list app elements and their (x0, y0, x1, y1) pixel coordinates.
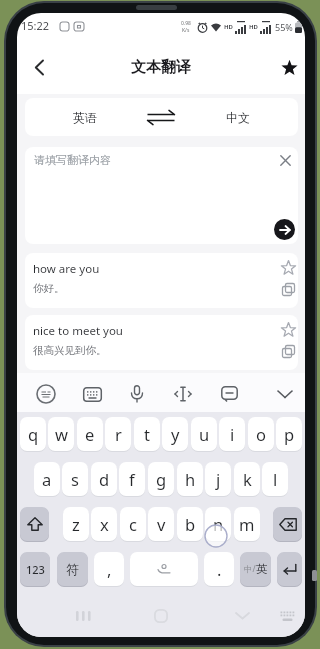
button[interactable]: q (20, 417, 46, 451)
button[interactable]: f (119, 462, 145, 496)
staticText: y (171, 423, 180, 445)
button[interactable]: k (234, 462, 260, 496)
staticText: , (107, 558, 112, 580)
staticText: d (99, 468, 110, 490)
staticText: 123 (26, 562, 45, 577)
button[interactable] (144, 98, 178, 136)
button[interactable]: v (148, 507, 174, 541)
button[interactable] (216, 381, 242, 407)
staticText: 请填写翻译内容 (34, 153, 111, 167)
staticText: HD (249, 23, 258, 31)
staticText: m (239, 513, 255, 535)
staticText: i (230, 423, 235, 445)
button[interactable]: p (276, 417, 302, 451)
button[interactable] (273, 148, 297, 172)
staticText: K/s (182, 27, 190, 34)
staticText: w (55, 423, 68, 445)
button[interactable]: l (262, 462, 288, 496)
staticText: 文本翻译 (131, 58, 191, 77)
button[interactable] (277, 256, 298, 278)
button[interactable]: s (62, 462, 88, 496)
staticText: . (217, 558, 222, 580)
button[interactable]: 符 (57, 552, 88, 586)
button[interactable]: , (94, 552, 124, 586)
button[interactable] (273, 507, 302, 541)
staticText: e (85, 423, 95, 445)
staticText: 0.98 (181, 20, 191, 27)
staticText: 55% (275, 21, 293, 33)
button[interactable] (276, 54, 302, 80)
staticText: nice to meet you (33, 323, 123, 339)
button[interactable]: u (191, 417, 217, 451)
staticText: 15:22 (21, 18, 50, 33)
button[interactable] (278, 341, 298, 361)
button[interactable]: 英语 (25, 98, 144, 136)
staticText: c (129, 513, 137, 535)
staticText: 很高兴见到你。 (33, 344, 107, 357)
button[interactable]: o (248, 417, 274, 451)
button[interactable] (277, 552, 302, 586)
staticText: 英语 (73, 110, 97, 125)
staticText: u (199, 423, 210, 445)
button[interactable]: x (91, 507, 117, 541)
button[interactable]: j (205, 462, 231, 496)
button[interactable] (124, 381, 150, 407)
button[interactable]: y (162, 417, 188, 451)
staticText: 你好。 (33, 282, 65, 295)
staticText: h (185, 468, 196, 490)
button[interactable] (147, 603, 175, 629)
button[interactable] (25, 53, 53, 81)
staticText: j (216, 468, 221, 490)
button[interactable]: i (219, 417, 245, 451)
staticText: f (129, 468, 135, 490)
button[interactable]: a (34, 462, 60, 496)
button[interactable]: d (91, 462, 117, 496)
staticText: q (28, 423, 39, 445)
button[interactable] (274, 219, 295, 240)
button[interactable]: b (177, 507, 203, 541)
button[interactable]: 123 (20, 552, 50, 586)
staticText: o (256, 423, 266, 445)
staticText: a (42, 468, 52, 490)
staticText: HD (224, 23, 233, 31)
button[interactable] (79, 381, 105, 407)
button[interactable]: w (48, 417, 74, 451)
button[interactable] (275, 605, 299, 627)
button[interactable] (278, 279, 298, 299)
button[interactable]: m (234, 507, 260, 541)
button[interactable]: g (148, 462, 174, 496)
button[interactable]: n (205, 507, 231, 541)
button[interactable]: 中文 (178, 98, 298, 136)
button[interactable] (20, 507, 49, 541)
button[interactable]: h (177, 462, 203, 496)
staticText: t (144, 423, 150, 445)
staticText: k (243, 468, 252, 490)
staticText: how are you (33, 261, 100, 277)
button[interactable]: z (63, 507, 89, 541)
button[interactable] (272, 381, 298, 407)
button[interactable] (170, 381, 196, 407)
staticText: z (72, 513, 80, 535)
button[interactable] (69, 604, 97, 628)
staticText: p (284, 423, 295, 445)
staticText: 符 (66, 561, 79, 577)
staticText: r (115, 423, 122, 445)
staticText: s (71, 468, 79, 490)
staticText: g (156, 468, 167, 490)
staticText: 中文 (226, 110, 250, 125)
button[interactable]: e (77, 417, 103, 451)
staticText: l (273, 468, 278, 490)
button[interactable]: r (105, 417, 131, 451)
button[interactable]: c (120, 507, 146, 541)
button[interactable]: 中/ (240, 552, 271, 586)
button[interactable]: . (204, 552, 234, 586)
button[interactable] (277, 318, 298, 340)
staticText: n (213, 513, 224, 535)
staticText: x (100, 513, 109, 535)
staticText: b (185, 513, 196, 535)
button[interactable] (33, 381, 59, 407)
button[interactable] (130, 552, 198, 586)
button[interactable]: t (134, 417, 160, 451)
button[interactable] (229, 604, 255, 628)
staticText: v (157, 513, 166, 535)
